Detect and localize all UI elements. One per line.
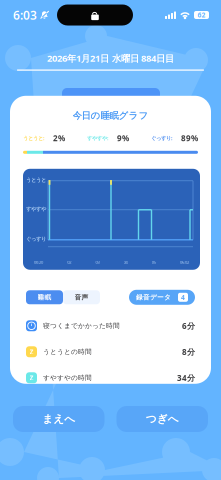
staticText: うとうとの時間: [43, 348, 92, 356]
staticText: 06:02: [180, 259, 189, 265]
staticText: Z: [29, 347, 33, 356]
staticText: すやすやの時間: [43, 374, 92, 382]
staticText: 4: [181, 293, 185, 302]
staticText: ぐっすり: [26, 236, 46, 242]
button[interactable]: 録音データ: [129, 290, 195, 305]
staticText: 03: [95, 259, 99, 265]
staticText: 05: [152, 259, 156, 265]
staticText: 04: [124, 259, 128, 265]
staticText: すやすや:: [87, 135, 108, 142]
staticText: 音声: [74, 293, 88, 301]
staticText: 今日の睡眠グラフ: [72, 110, 148, 121]
staticText: ぐっすり:: [151, 135, 172, 142]
staticText: 02: [67, 259, 71, 265]
staticText: 62: [197, 11, 205, 19]
button[interactable]: まえへ: [13, 406, 104, 432]
button[interactable]: つぎへ: [116, 406, 208, 432]
staticText: うとうと: [26, 177, 46, 183]
staticText: 2%: [53, 133, 65, 143]
staticText: Z: [29, 373, 33, 382]
staticText: 睡眠: [37, 293, 51, 301]
staticText: 6分: [182, 320, 195, 331]
staticText: 寝つくまでかかった時間: [43, 322, 120, 330]
staticText: すやすや: [26, 206, 46, 212]
staticText: つぎへ: [146, 412, 179, 425]
staticText: 9%: [117, 133, 129, 143]
staticText: 8分: [182, 346, 195, 357]
button[interactable]: 睡眠: [26, 290, 63, 304]
staticText: 2026年1月21日 水曜日 884日目: [47, 52, 174, 64]
staticText: うとうと:: [23, 135, 44, 142]
button[interactable]: Z: [10, 365, 211, 391]
button[interactable]: Z: [10, 339, 211, 365]
staticText: 00:20: [34, 259, 43, 265]
button[interactable]: 寝つくまでかかった時間: [10, 313, 211, 339]
staticText: 6:03: [13, 7, 37, 23]
staticText: まえへ: [42, 412, 75, 425]
button[interactable]: 音声: [63, 290, 100, 304]
staticText: 録音データ: [136, 293, 171, 301]
staticText: 34分: [177, 372, 195, 383]
staticText: 89%: [181, 133, 198, 143]
